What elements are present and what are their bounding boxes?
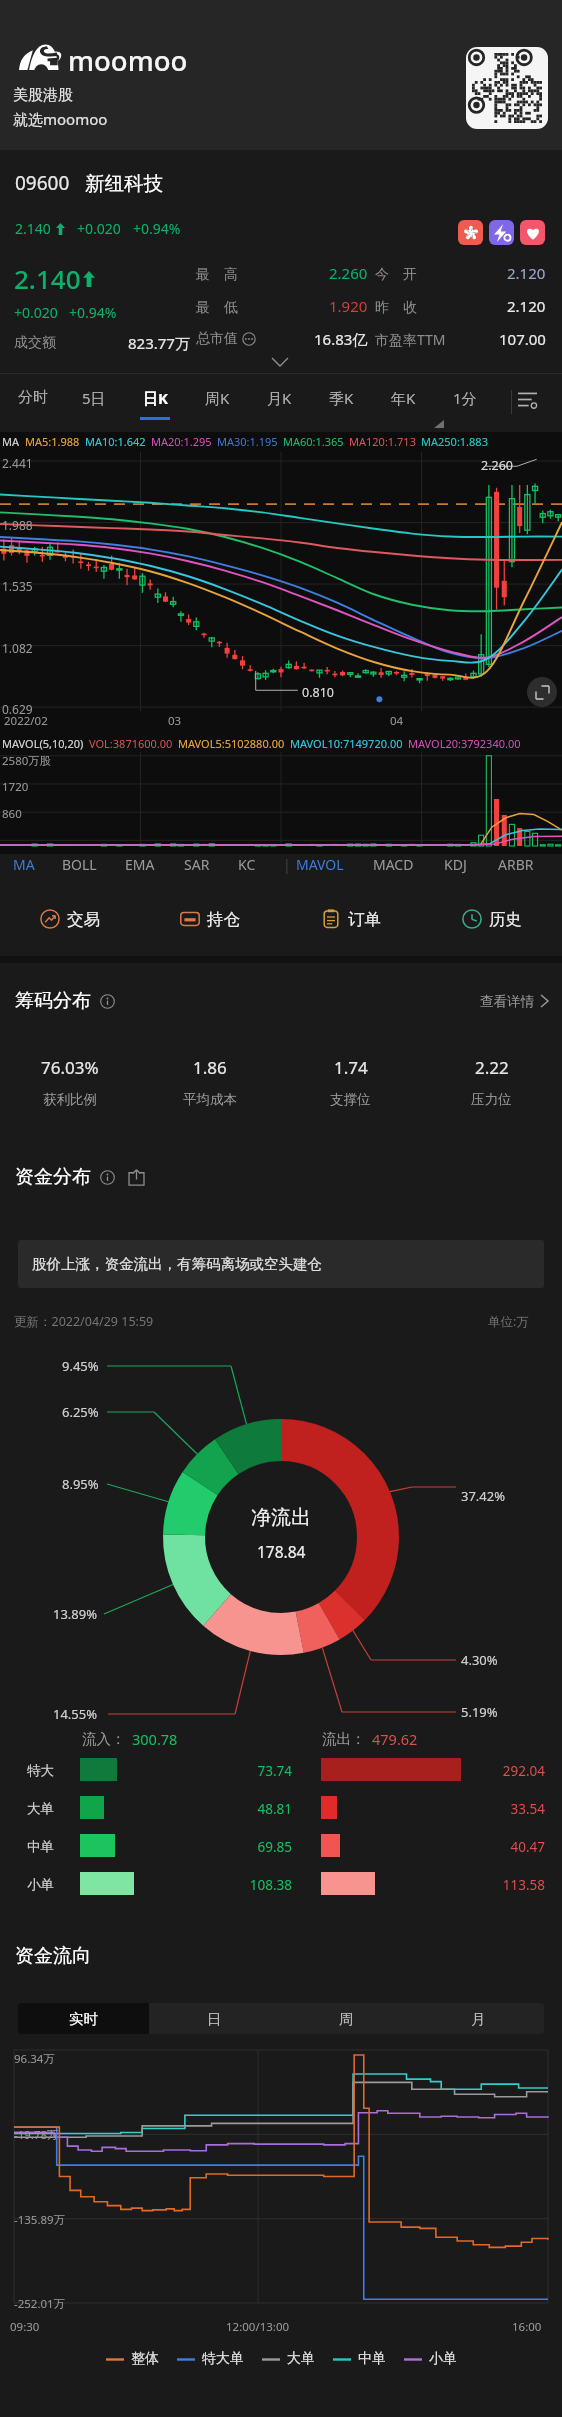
staticText: 04 <box>390 713 404 729</box>
button[interactable]: SAR <box>176 846 218 882</box>
staticText: -252.01万 <box>14 2296 66 2312</box>
button[interactable]: MACD <box>369 846 417 882</box>
staticText: MAVOL20:3792340.00 <box>408 736 521 751</box>
staticText: 今 开 <box>375 264 417 283</box>
button[interactable]: 持仓 <box>140 886 280 952</box>
button[interactable]: More info <box>242 332 256 346</box>
staticText: 持仓 <box>207 909 240 930</box>
button[interactable]: 历史 <box>421 886 562 952</box>
button[interactable]: 周 <box>280 2003 412 2034</box>
staticText: 市盈率TTM <box>375 330 446 349</box>
staticText: 1.535 <box>2 578 33 594</box>
staticText: 14.55% <box>53 1705 98 1723</box>
button[interactable]: Info <box>100 994 115 1009</box>
staticText: 823.77万 <box>128 333 190 353</box>
button[interactable]: Chart settings <box>496 374 558 432</box>
button[interactable]: KC <box>226 846 268 882</box>
button[interactable]: 季K <box>310 374 372 432</box>
staticText: 292.04 <box>440 1762 545 1780</box>
button[interactable]: Share <box>128 1169 145 1186</box>
staticText: 2.140 <box>15 219 51 238</box>
staticText: 特大 <box>27 1762 54 1779</box>
button[interactable]: BOLL <box>55 846 103 882</box>
button[interactable]: 周K <box>186 374 248 432</box>
staticText: 日 <box>207 2010 222 2028</box>
staticText: 5日 <box>82 388 106 408</box>
button[interactable]: 1分 <box>434 374 496 432</box>
staticText: -19.78万 <box>14 2127 59 2143</box>
button[interactable]: 日K <box>124 374 186 432</box>
button[interactable]: Info <box>100 1170 115 1185</box>
staticText: 73.74 <box>190 1762 292 1780</box>
staticText: 8.95% <box>62 1475 99 1493</box>
button[interactable]: 5日 <box>63 374 124 432</box>
staticText: 16.83亿 <box>314 329 368 349</box>
staticText: KDJ <box>444 855 467 874</box>
button[interactable]: 分时 <box>2 374 63 432</box>
staticText: 特大单 <box>202 2350 244 2368</box>
button[interactable]: 订单 <box>280 886 421 952</box>
staticText: VOL:3871600.00 <box>89 736 173 751</box>
staticText: 股价上涨，资金流出，有筹码离场或空头建仓 <box>32 1255 322 1273</box>
staticText: 12:00/13:00 <box>226 2319 290 2335</box>
button[interactable]: 中单 <box>333 2350 386 2368</box>
staticText: MA30:1.195 <box>217 434 278 449</box>
button[interactable]: 特大单 <box>177 2350 244 2368</box>
button[interactable]: Tag <box>458 220 483 245</box>
staticText: 支撑位 <box>330 1091 371 1108</box>
button[interactable]: QR code <box>466 47 548 129</box>
button[interactable]: 月K <box>248 374 310 432</box>
staticText: 2.120 <box>507 296 546 316</box>
button[interactable]: EMA <box>119 846 161 882</box>
button[interactable]: 整体 <box>106 2350 159 2368</box>
button[interactable]: 日 <box>149 2003 280 2034</box>
button[interactable]: ARBR <box>492 846 540 882</box>
staticText: 成交额 <box>14 334 56 352</box>
staticText: 107.00 <box>499 329 546 349</box>
staticText: 新纽科技 <box>85 171 163 196</box>
button[interactable]: 月 <box>412 2003 544 2034</box>
staticText: 中单 <box>27 1838 54 1855</box>
staticText: moomoo <box>68 42 188 79</box>
button[interactable]: 实时 <box>18 2003 149 2034</box>
button[interactable]: Fullscreen <box>527 677 557 707</box>
staticText: | <box>283 855 291 874</box>
staticText: 03 <box>168 713 182 729</box>
button[interactable]: 年K <box>372 374 434 432</box>
staticText: 月K <box>267 388 292 408</box>
staticText: MA20:1.295 <box>151 434 212 449</box>
staticText: 300.78 <box>132 1729 178 1749</box>
staticText: 流出： <box>322 1730 366 1748</box>
staticText: 小单 <box>27 1876 54 1893</box>
button[interactable]: KDJ <box>434 846 476 882</box>
staticText: 0.629 <box>2 701 33 717</box>
staticText: 2.120 <box>507 263 546 283</box>
staticText: 获利比例 <box>43 1091 97 1108</box>
button[interactable]: MA <box>7 846 41 882</box>
staticText: 40.47 <box>440 1838 545 1856</box>
staticText: 1720 <box>2 779 29 795</box>
staticText: -135.89万 <box>14 2212 66 2228</box>
button[interactable]: 交易 <box>0 886 140 952</box>
staticText: MAVOL10:7149720.00 <box>290 736 403 751</box>
button[interactable]: Tag <box>520 220 545 245</box>
button[interactable]: | <box>282 846 292 882</box>
staticText: 年K <box>391 388 416 408</box>
staticText: 108.38 <box>190 1876 292 1894</box>
staticText: MA120:1.713 <box>349 434 416 449</box>
staticText: 1.988 <box>2 517 33 533</box>
button[interactable]: 筹码分布 <box>15 980 548 1022</box>
staticText: 平均成本 <box>183 1091 237 1108</box>
staticText: +0.94% <box>69 303 117 322</box>
button[interactable]: MAVOL <box>292 846 348 882</box>
button[interactable]: Tag <box>489 220 514 245</box>
staticText: 压力位 <box>471 1091 512 1108</box>
staticText: 月 <box>471 2010 486 2028</box>
staticText: 就选moomoo <box>13 109 108 129</box>
staticText: EMA <box>125 855 155 874</box>
button[interactable]: 大单 <box>262 2350 315 2368</box>
button[interactable]: 小单 <box>404 2350 457 2368</box>
staticText: 2.140 <box>14 261 81 296</box>
staticText: 流入： <box>82 1730 126 1748</box>
staticText: BOLL <box>62 855 97 874</box>
